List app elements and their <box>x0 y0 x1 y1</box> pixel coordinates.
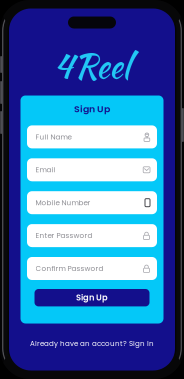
button[interactable]: Full Name <box>27 125 157 148</box>
button[interactable]: Confirm Password <box>27 257 157 280</box>
staticText: Email <box>35 165 55 175</box>
button[interactable]: Already have an account? Sign In <box>25 334 159 353</box>
staticText: Mobile Number <box>35 198 90 208</box>
staticText: Already have an account? Sign In <box>30 339 154 348</box>
button[interactable]: Enter Password <box>27 224 157 247</box>
button[interactable]: Mobile Number <box>27 191 157 214</box>
staticText: Sign Up <box>76 292 108 303</box>
staticText: Enter Password <box>35 231 92 241</box>
staticText: Full Name <box>35 132 71 142</box>
button[interactable]: Email <box>27 158 157 181</box>
staticText: 4Reel <box>54 42 130 90</box>
staticText: Confirm Password <box>35 263 103 274</box>
button[interactable]: Sign Up <box>34 289 149 306</box>
staticText: Sign Up <box>74 102 110 116</box>
